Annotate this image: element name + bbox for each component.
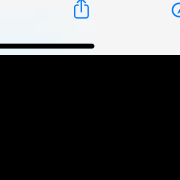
button[interactable]: Open in Safari (166, 0, 180, 23)
button[interactable]: Share (66, 0, 98, 26)
